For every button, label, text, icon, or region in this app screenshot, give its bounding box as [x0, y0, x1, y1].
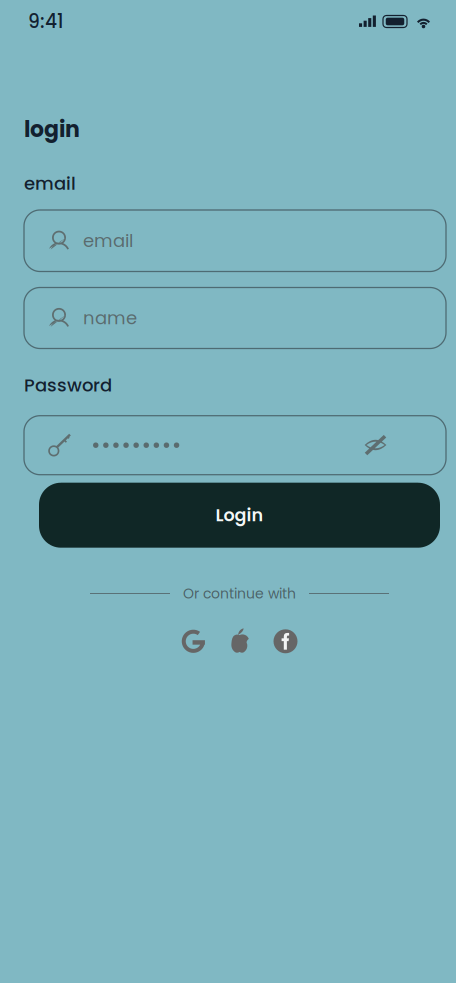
staticText: email: [24, 171, 76, 196]
button[interactable]: Continue with Apple: [216, 628, 262, 654]
button[interactable]: Show password: [353, 423, 398, 467]
staticText: Login: [215, 503, 263, 527]
staticText: Or continue with: [183, 584, 296, 603]
staticText: email: [83, 228, 133, 253]
button[interactable]: Continue with Google: [170, 628, 216, 654]
button[interactable]: Continue with Facebook: [262, 628, 308, 654]
staticText: login: [24, 114, 80, 145]
staticText: name: [83, 305, 137, 331]
staticText: Password: [24, 372, 112, 398]
staticText: 9:41: [28, 8, 64, 34]
button[interactable]: Login: [39, 483, 440, 548]
